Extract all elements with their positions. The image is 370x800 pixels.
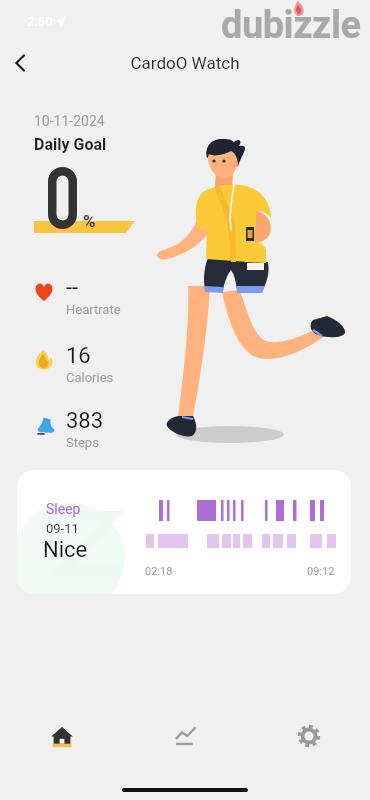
staticText: CardoO Watch [0,53,370,73]
staticText: Steps [66,435,99,450]
staticText: 16 [66,343,91,369]
staticText: Daily Goal [34,135,107,154]
button[interactable]: -- [28,275,160,331]
staticText: -- [66,275,79,301]
staticText: Nice [43,537,88,563]
staticText: % [83,211,96,231]
button[interactable]: Settings [247,706,370,766]
staticText: dubizzle [221,3,361,48]
button[interactable]: Sleep [17,470,351,594]
button[interactable]: 16 [28,343,160,399]
staticText: 09:12 [307,565,335,578]
staticText: 02:18 [145,565,173,578]
staticText: 09-11 [46,521,79,536]
staticText: Heartrate [66,302,121,317]
button[interactable]: Back [2,45,38,81]
button[interactable]: Home [0,706,124,766]
staticText: 10-11-2024 [34,113,105,129]
staticText: 383 [66,408,104,434]
staticText: Sleep [46,501,81,517]
staticText: 2:50 [27,14,53,29]
button[interactable]: Stats [124,706,247,766]
staticText: Calories [66,370,114,385]
button[interactable]: 383 [28,408,160,464]
